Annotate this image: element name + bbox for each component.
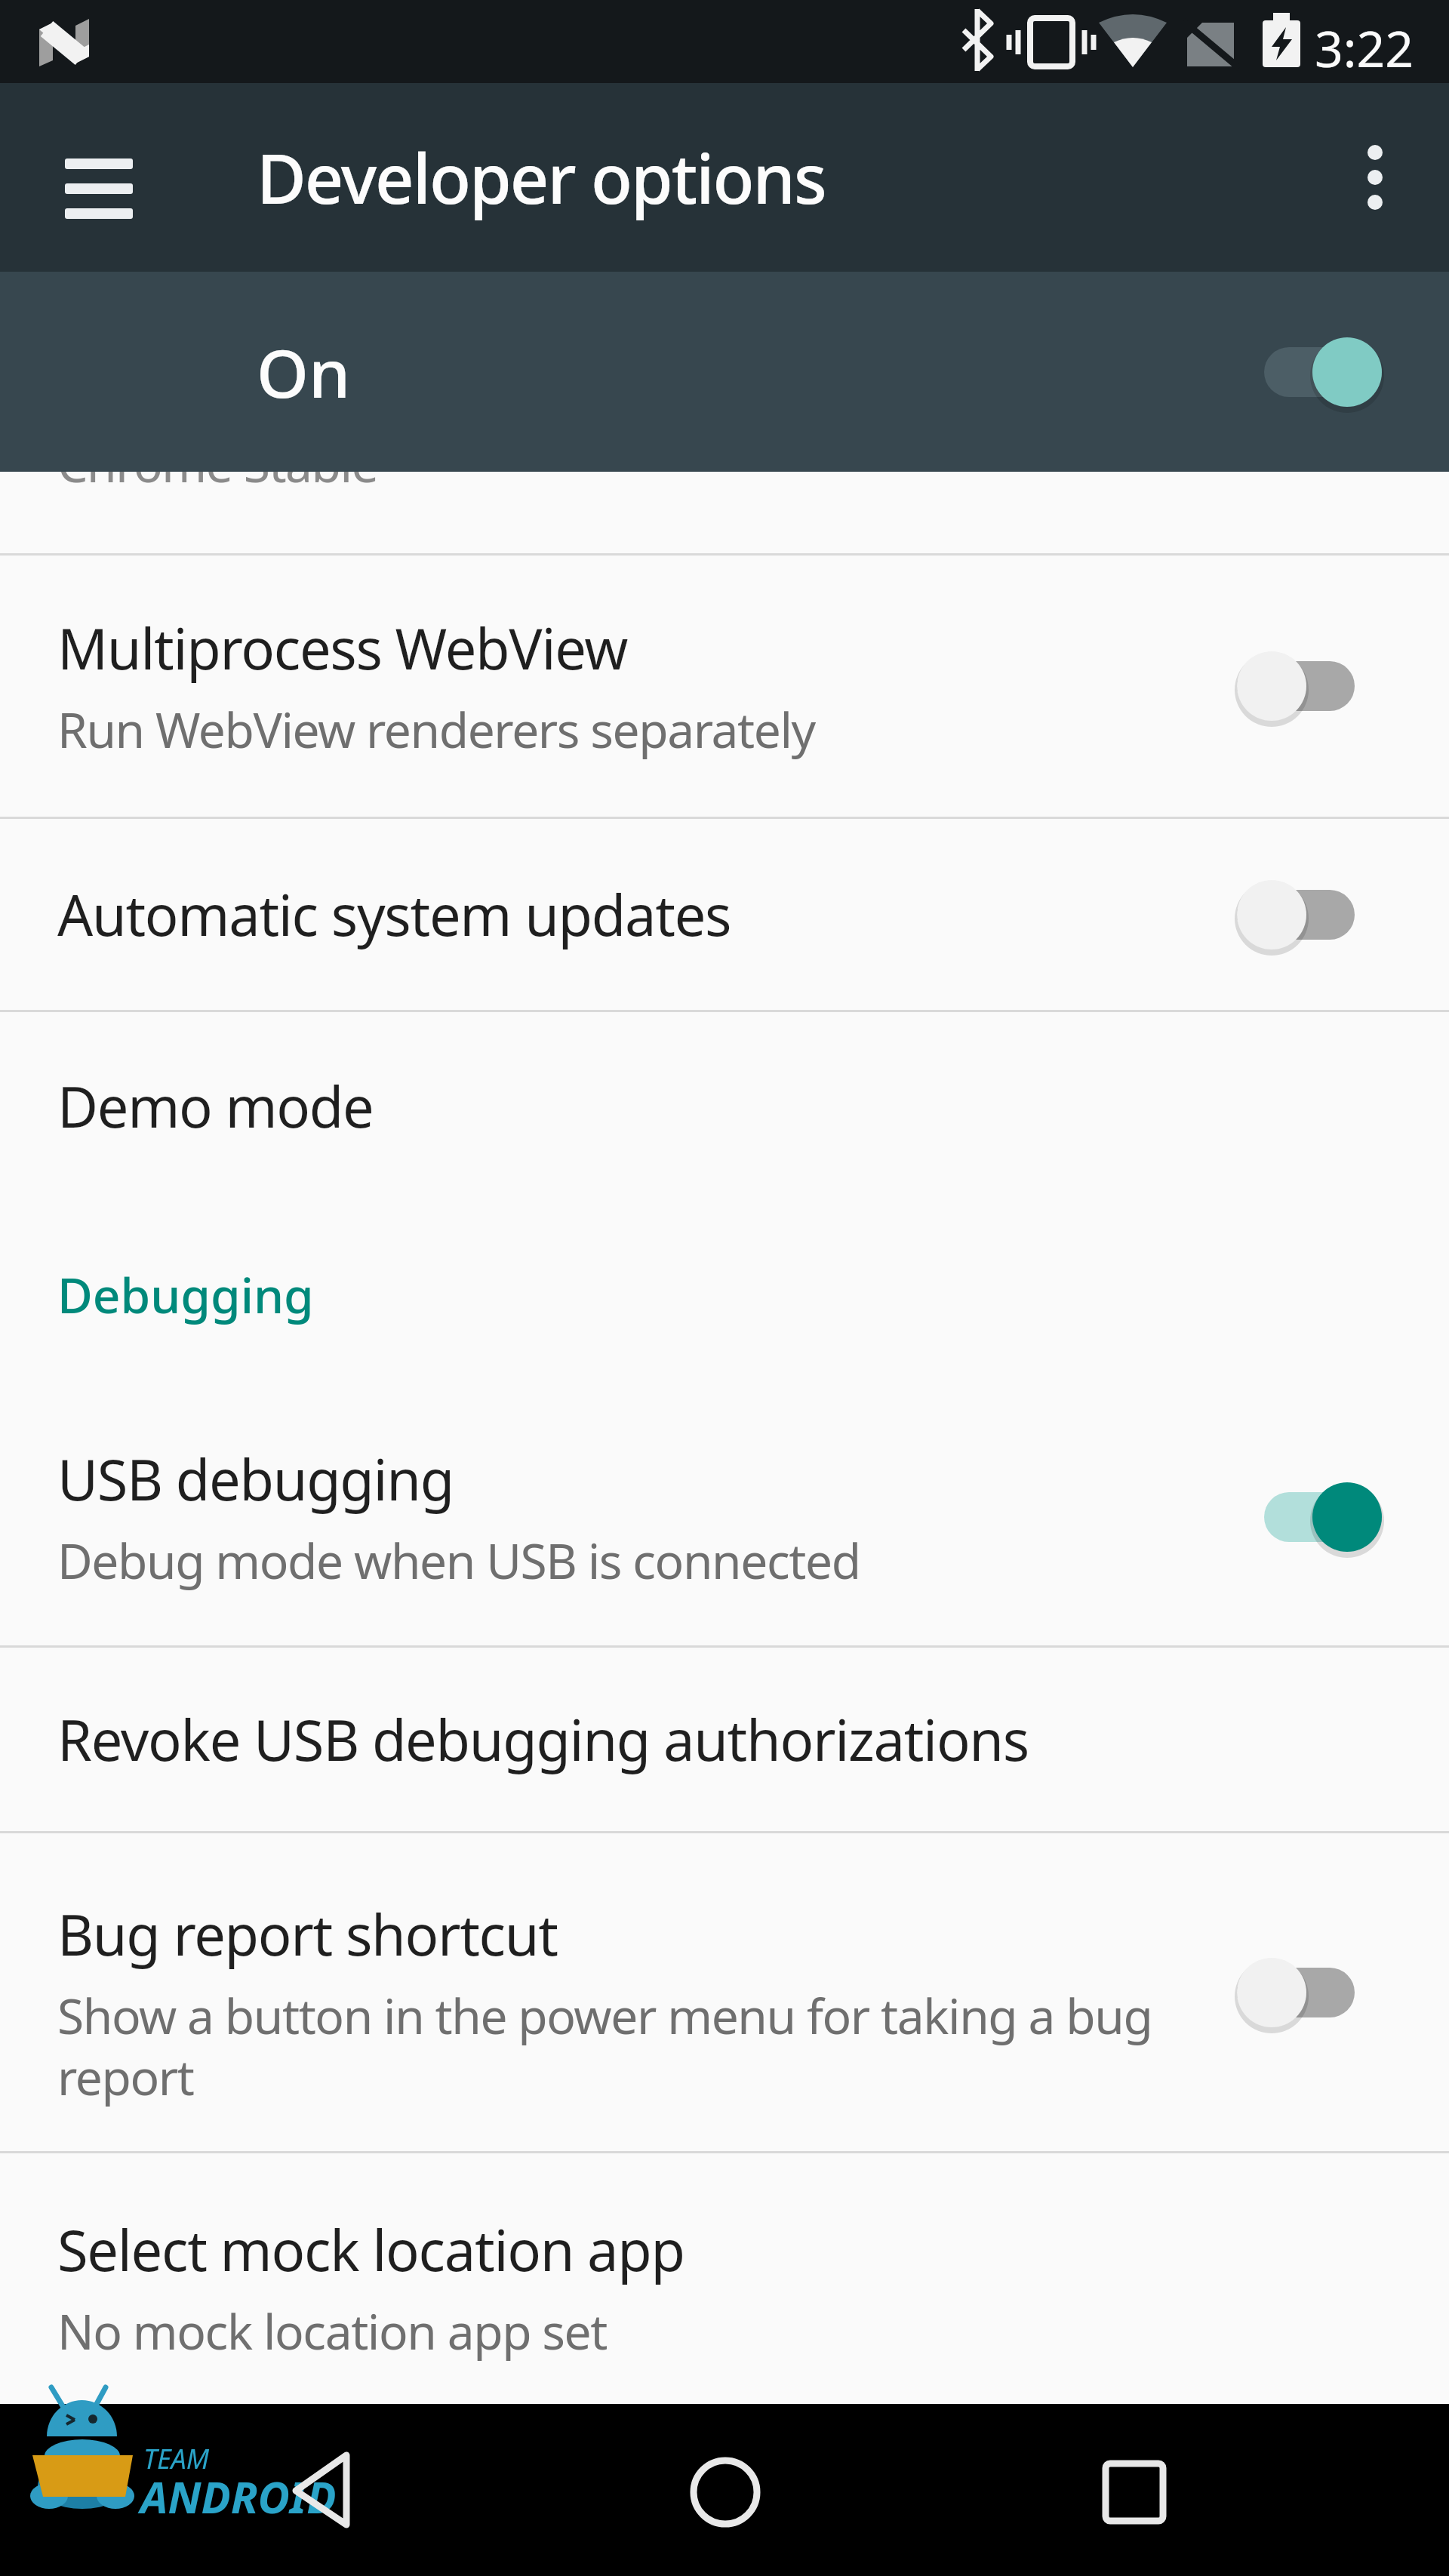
button[interactable]: USB debugging [0,1389,1449,1645]
button[interactable] [1263,1481,1383,1553]
staticText: Show a button in the power menu for taki… [57,1983,1152,2110]
button[interactable] [1236,1956,1355,2029]
button[interactable] [1236,879,1355,951]
button[interactable]: Multiprocess WebView [0,556,1449,817]
staticText: 3:22 [1315,14,1414,82]
staticText: TEAM [143,2440,210,2477]
button[interactable]: On [0,272,1449,472]
button[interactable] [1358,83,1449,272]
button[interactable] [249,2444,392,2542]
staticText: Automatic system updates [57,876,731,953]
staticText: ANDROID [140,2467,337,2526]
staticText: Revoke USB debugging authorizations [57,1701,1029,1777]
staticText: Bug report shortcut [57,1896,558,1972]
staticText: Chrome Stable [57,431,378,497]
button[interactable] [1064,2444,1207,2542]
button[interactable] [657,2444,800,2542]
staticText: Run WebView renderers separately [57,697,815,762]
staticText: On [257,327,351,417]
button[interactable] [0,83,196,272]
button[interactable]: Revoke USB debugging authorizations [0,1648,1449,1831]
button[interactable] [1236,650,1355,722]
button[interactable]: Demo mode [0,1012,1449,1200]
button[interactable]: Select mock location app [0,2153,1449,2404]
button[interactable]: Bug report shortcut [0,1833,1449,2151]
staticText: Developer options [257,131,826,224]
staticText: No mock location app set [57,2298,607,2364]
staticText: Debugging [57,1262,314,1328]
button[interactable]: Automatic system updates [0,819,1449,1010]
staticText: Multiprocess WebView [57,610,627,686]
staticText: USB debugging [57,1441,454,1517]
staticText: Debug mode when USB is connected [57,1528,860,1593]
staticText: Demo mode [57,1068,374,1144]
staticText: Select mock location app [57,2211,685,2288]
